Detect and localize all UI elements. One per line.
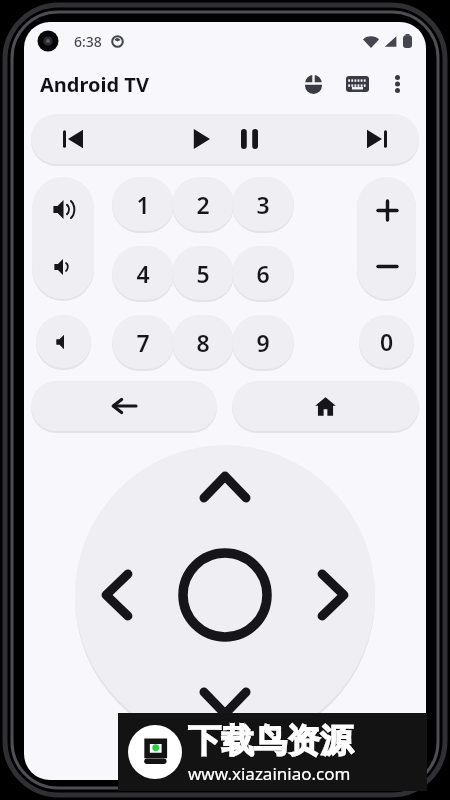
staticText: 6 xyxy=(256,258,270,289)
staticText: 8 xyxy=(196,327,210,358)
button[interactable]: 3 xyxy=(232,177,294,231)
button[interactable]: 1 xyxy=(112,177,174,231)
button[interactable]: 0 xyxy=(359,315,414,368)
button[interactable]: Select xyxy=(179,549,271,641)
button[interactable]: Previous xyxy=(51,117,95,161)
button[interactable]: Up xyxy=(178,445,272,525)
staticText: 5 xyxy=(196,258,210,289)
button[interactable]: Play xyxy=(179,117,223,161)
button[interactable]: 7 xyxy=(112,315,174,369)
button[interactable]: 4 xyxy=(112,246,174,300)
staticText: 9 xyxy=(256,327,270,358)
button[interactable]: Home xyxy=(232,381,419,431)
staticText: 下载鸟资源 xyxy=(188,720,353,762)
button[interactable]: 8 xyxy=(172,315,234,369)
button[interactable]: Keyboard xyxy=(338,65,376,103)
button[interactable]: Media controls xyxy=(31,114,419,164)
button[interactable]: 5 xyxy=(172,246,234,300)
staticText: 4 xyxy=(136,258,150,289)
staticText: Android TV xyxy=(40,71,149,98)
button[interactable]: 2 xyxy=(172,177,234,231)
staticText: 7 xyxy=(136,327,150,358)
button[interactable]: Mute xyxy=(36,315,91,368)
button[interactable]: 6 xyxy=(232,246,294,300)
staticText: www.xiazainiao.com xyxy=(188,762,351,785)
button[interactable]: Volume down xyxy=(38,242,88,292)
button[interactable]: Volume xyxy=(32,177,94,299)
button[interactable]: Left xyxy=(75,548,155,642)
button[interactable]: Pause xyxy=(227,117,271,161)
staticText: 1 xyxy=(136,189,150,220)
button[interactable]: Volume up xyxy=(38,184,88,234)
button[interactable]: Channel up xyxy=(363,186,411,234)
button[interactable]: 9 xyxy=(232,315,294,369)
button[interactable]: Channel down xyxy=(363,242,411,290)
button[interactable]: More options xyxy=(378,65,416,103)
button[interactable]: Touchpad xyxy=(294,65,332,103)
staticText: 2 xyxy=(196,189,210,220)
button[interactable]: Next xyxy=(355,117,399,161)
button[interactable]: Right xyxy=(295,548,375,642)
staticText: 3 xyxy=(256,189,270,220)
button[interactable]: Down xyxy=(178,665,272,745)
button[interactable]: Channel xyxy=(357,177,416,299)
staticText: 6:38 xyxy=(74,32,102,51)
button[interactable]: Back xyxy=(31,381,217,431)
staticText: 0 xyxy=(380,326,394,357)
